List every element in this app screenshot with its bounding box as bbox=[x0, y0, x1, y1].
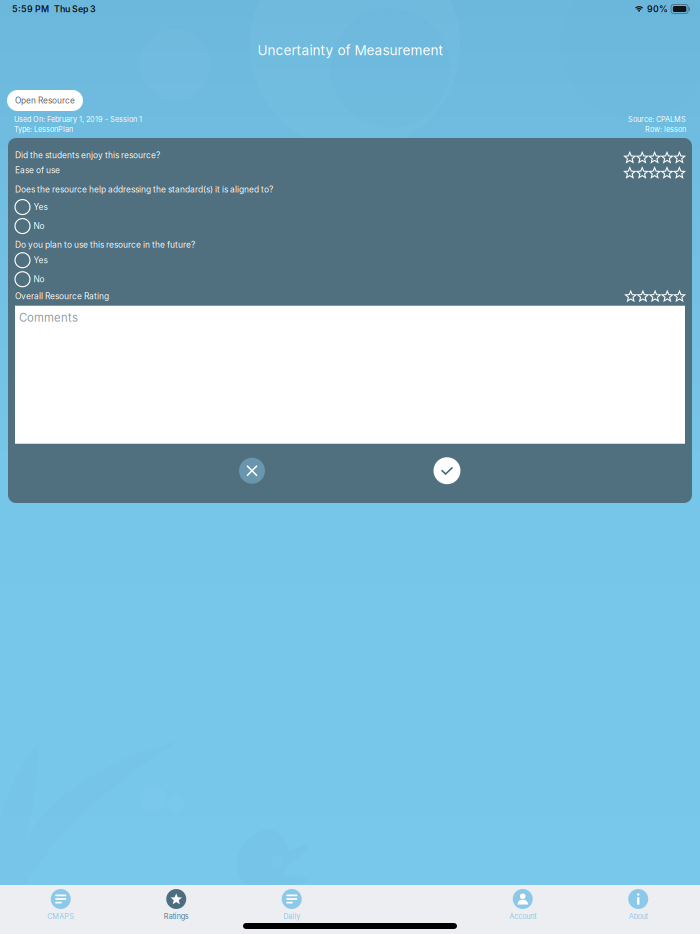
staticText: Overall Resource Rating bbox=[15, 291, 109, 301]
button[interactable]: Open Resource bbox=[7, 90, 83, 111]
button[interactable]: Yes bbox=[15, 198, 685, 217]
button[interactable]: Daily bbox=[234, 889, 349, 921]
staticText: Ease of use bbox=[15, 165, 60, 175]
staticText: Uncertainty of Measurement bbox=[257, 42, 442, 58]
button[interactable]: No bbox=[15, 270, 685, 289]
button[interactable]: Cancel bbox=[233, 452, 271, 490]
staticText: Yes bbox=[33, 255, 47, 265]
staticText: Row: lesson bbox=[645, 125, 686, 134]
button[interactable]: Submit bbox=[428, 452, 466, 490]
staticText: No bbox=[33, 274, 44, 284]
staticText: Used On: February 1, 2019 - Session 1 bbox=[14, 115, 142, 124]
button[interactable]: Ratings bbox=[118, 889, 234, 921]
staticText: Thu Sep 3 bbox=[54, 4, 96, 14]
button[interactable]: About bbox=[580, 889, 696, 921]
staticText: CMAPS bbox=[47, 912, 74, 921]
staticText: Account bbox=[509, 912, 536, 921]
staticText: No bbox=[33, 221, 44, 231]
staticText: Ratings bbox=[164, 912, 189, 921]
button[interactable]: Yes bbox=[15, 251, 685, 270]
staticText: Source: CPALMS bbox=[628, 115, 686, 124]
staticText: Comments bbox=[19, 311, 78, 324]
button[interactable]: No bbox=[15, 217, 685, 236]
staticText: Yes bbox=[33, 202, 47, 212]
staticText: Do you plan to use this resource in the … bbox=[15, 240, 195, 250]
staticText: Open Resource bbox=[15, 95, 75, 105]
staticText: 5:59 PM bbox=[12, 4, 49, 14]
button[interactable]: Account bbox=[465, 889, 580, 921]
staticText: Daily bbox=[283, 912, 300, 921]
button[interactable]: CMAPS bbox=[3, 889, 118, 921]
staticText: Type: LessonPlan bbox=[14, 125, 73, 134]
staticText: Does the resource help addressing the st… bbox=[15, 184, 273, 195]
staticText: Did the students enjoy this resource? bbox=[15, 150, 160, 160]
staticText: About bbox=[629, 912, 648, 921]
staticText: 90% bbox=[647, 4, 668, 14]
